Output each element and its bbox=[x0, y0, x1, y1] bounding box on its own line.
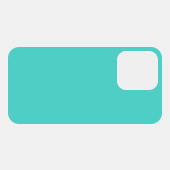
button[interactable]: Turquoise silicone phone case bbox=[8, 47, 162, 124]
